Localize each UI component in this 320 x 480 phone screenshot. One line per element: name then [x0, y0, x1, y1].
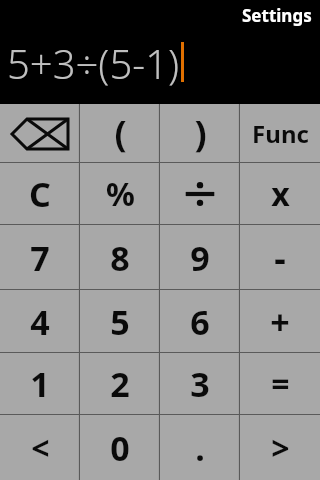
staticText: 5 [110, 299, 130, 345]
button[interactable]: ( [80, 104, 160, 163]
button[interactable]: < [0, 415, 80, 480]
staticText: = [271, 362, 290, 406]
staticText: x [271, 172, 290, 216]
button[interactable]: 2 [80, 353, 160, 415]
button[interactable]: 9 [160, 225, 240, 290]
button[interactable]: x [240, 163, 320, 225]
button[interactable]: . [160, 415, 240, 480]
button[interactable]: Func [240, 104, 320, 163]
button[interactable]: Backspace [0, 104, 80, 163]
button[interactable]: C [0, 163, 80, 225]
staticText: 0 [110, 425, 130, 471]
staticText: 7 [30, 235, 50, 281]
button[interactable]: 1 [0, 353, 80, 415]
staticText: + [270, 299, 290, 345]
staticText: 4 [30, 299, 50, 345]
staticText: Settings [242, 4, 312, 27]
staticText: C [29, 171, 51, 217]
button[interactable]: 3 [160, 353, 240, 415]
staticText: ) [194, 109, 207, 158]
button[interactable]: Divide [160, 163, 240, 225]
button[interactable]: > [240, 415, 320, 480]
button[interactable]: 5 [80, 290, 160, 353]
button[interactable]: Settings [242, 4, 312, 27]
staticText: > [271, 426, 290, 470]
staticText: 3 [190, 361, 210, 407]
staticText: 5+3÷(5-1) [7, 36, 180, 90]
staticText: 1 [30, 361, 50, 407]
button[interactable]: - [240, 225, 320, 290]
staticText: ( [114, 109, 127, 158]
staticText: % [106, 172, 135, 216]
staticText: 6 [190, 299, 210, 345]
button[interactable]: 4 [0, 290, 80, 353]
button[interactable]: 6 [160, 290, 240, 353]
button[interactable]: = [240, 353, 320, 415]
button[interactable]: 7 [0, 225, 80, 290]
staticText: - [274, 233, 286, 282]
button[interactable]: + [240, 290, 320, 353]
staticText: < [31, 426, 50, 470]
staticText: 2 [110, 361, 130, 407]
button[interactable]: % [80, 163, 160, 225]
staticText: 9 [190, 235, 210, 281]
staticText: . [195, 425, 205, 471]
button[interactable]: ) [160, 104, 240, 163]
staticText: Func [252, 117, 309, 150]
button[interactable]: 8 [80, 225, 160, 290]
staticText: 8 [110, 235, 130, 281]
button[interactable]: 0 [80, 415, 160, 480]
